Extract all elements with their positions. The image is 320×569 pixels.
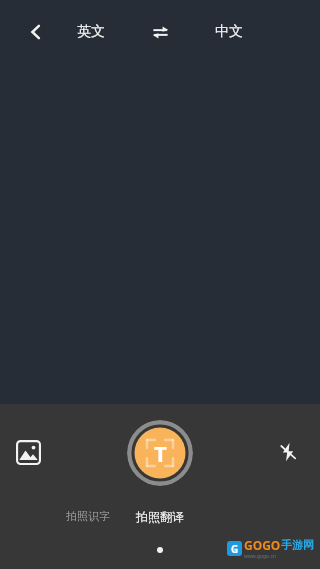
staticText: GOGO bbox=[244, 537, 281, 553]
button[interactable]: 英文 bbox=[66, 14, 116, 50]
staticText: G bbox=[231, 542, 239, 556]
staticText: www.gogo.cn bbox=[244, 553, 276, 560]
button[interactable]: Capture and translate bbox=[127, 420, 193, 486]
button[interactable]: Swap languages bbox=[142, 14, 178, 50]
button[interactable]: Gallery bbox=[8, 432, 48, 472]
staticText: 拍照翻译 bbox=[136, 509, 184, 524]
staticText: T bbox=[154, 438, 167, 468]
button[interactable]: 拍照翻译 bbox=[128, 501, 192, 531]
button[interactable]: 中文 bbox=[204, 14, 254, 50]
staticText: 英文 bbox=[77, 23, 105, 41]
staticText: 手游网 bbox=[281, 538, 314, 552]
button[interactable]: Flash off bbox=[269, 433, 307, 471]
staticText: 拍照识字 bbox=[66, 509, 110, 523]
staticText: 中文 bbox=[215, 23, 243, 41]
button[interactable]: 拍照识字 bbox=[56, 501, 120, 531]
button[interactable]: Back bbox=[18, 14, 54, 50]
